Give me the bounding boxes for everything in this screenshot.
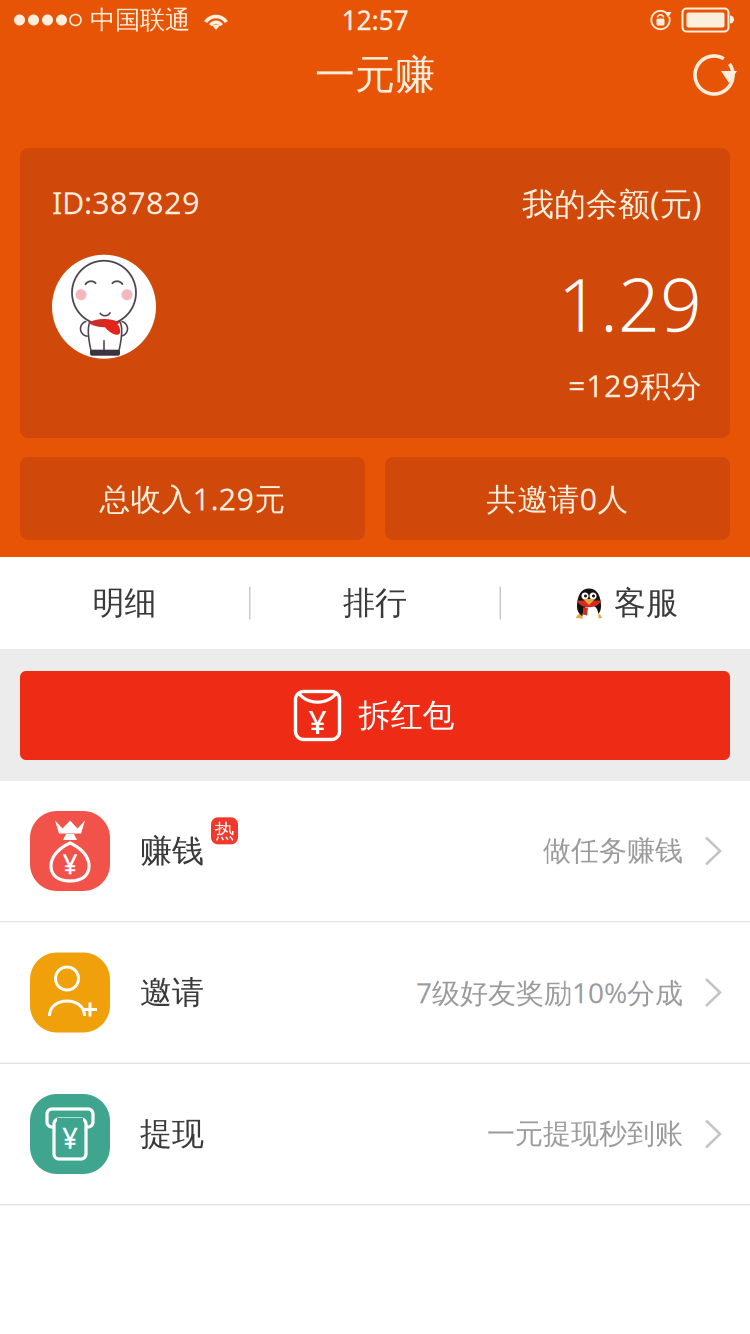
staticText: 拆红包	[358, 696, 454, 735]
staticText: 一元提现秒到账	[487, 1117, 683, 1151]
button[interactable]: ¥	[0, 781, 750, 922]
staticText: 赚钱	[140, 831, 204, 871]
button[interactable]: 排行	[250, 557, 499, 649]
staticText: 热	[214, 819, 234, 843]
staticText: 7级好友奖励10%分成	[416, 974, 683, 1011]
staticText: 提现	[140, 1114, 204, 1154]
staticText: 总收入1.29元	[99, 478, 285, 519]
staticText: 我的余额(元)	[522, 182, 702, 224]
staticText: ¥	[62, 1119, 78, 1157]
staticText: 一元赚	[315, 50, 435, 99]
button[interactable]: Refresh	[678, 40, 750, 110]
staticText: 邀请	[140, 973, 204, 1012]
staticText: 1.29	[558, 254, 702, 352]
button[interactable]: 总收入1.29元	[20, 457, 365, 540]
staticText: 中国联通	[90, 4, 190, 35]
button[interactable]: ¥	[20, 671, 730, 760]
button[interactable]: 客服	[501, 557, 750, 649]
staticText: 明细	[92, 583, 156, 623]
staticText: ¥	[62, 846, 77, 882]
button[interactable]: 共邀请0人	[385, 457, 730, 540]
staticText: 排行	[343, 583, 407, 623]
button[interactable]: 邀请	[0, 922, 750, 1064]
staticText: 12:57	[341, 2, 408, 38]
staticText: ¥	[308, 700, 326, 743]
staticText: ID:387829	[52, 182, 200, 223]
staticText: 客服	[614, 583, 678, 623]
button[interactable]: ¥	[0, 1064, 750, 1205]
button[interactable]: 明细	[0, 557, 249, 649]
staticText: 共邀请0人	[486, 478, 628, 519]
staticText: =129积分	[568, 365, 702, 406]
staticText: 做任务赚钱	[543, 834, 683, 868]
